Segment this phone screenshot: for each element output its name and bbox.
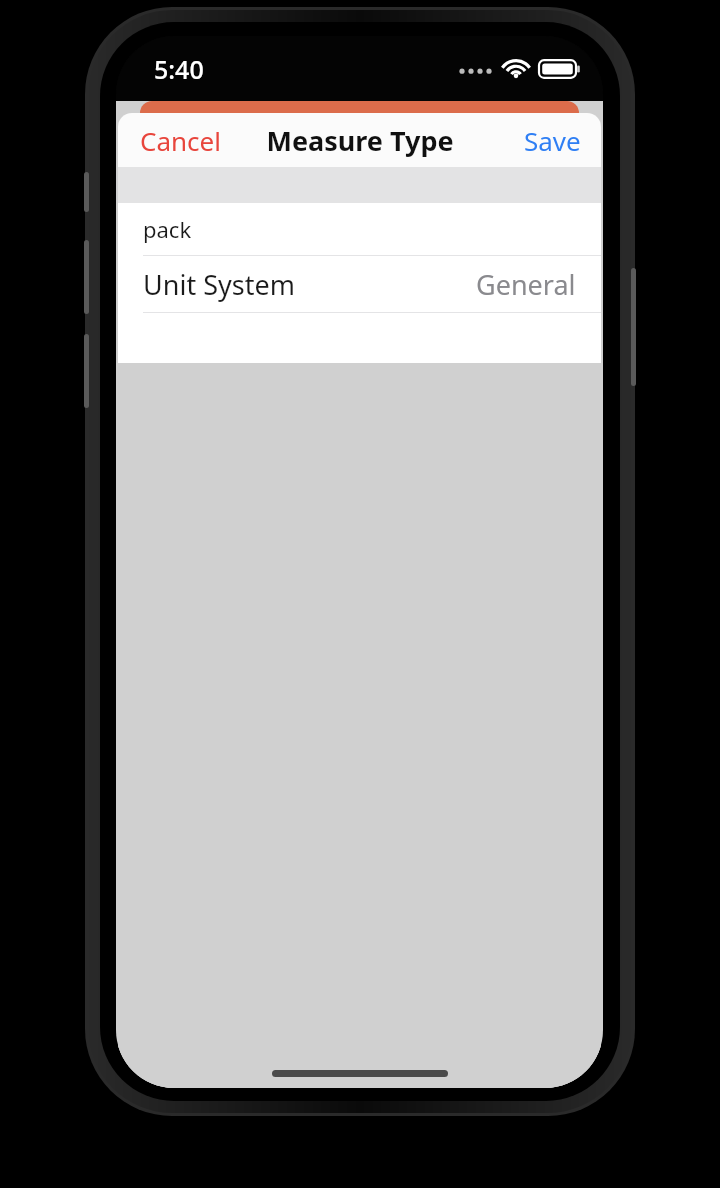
other: Wi-Fi	[502, 54, 530, 76]
staticText: 5:40	[154, 52, 204, 86]
button[interactable]: Unit System	[118, 256, 601, 312]
staticText: Unit System	[143, 266, 295, 303]
other: Battery	[539, 54, 581, 76]
staticText: General	[476, 266, 576, 303]
staticText: Cancel	[140, 123, 221, 158]
other: Wi-Fi	[502, 58, 530, 80]
staticText: Measure Type	[266, 122, 454, 159]
other: Cellular signal	[458, 60, 494, 78]
staticText: 5:40	[154, 48, 204, 82]
button[interactable]: Cancel	[118, 115, 235, 166]
staticText: pack	[143, 214, 192, 244]
button[interactable]: pack	[118, 203, 601, 255]
button[interactable]: Save	[510, 115, 601, 166]
staticText: Save	[524, 123, 581, 158]
other: Battery	[539, 58, 581, 80]
other: Cellular signal	[458, 56, 494, 74]
